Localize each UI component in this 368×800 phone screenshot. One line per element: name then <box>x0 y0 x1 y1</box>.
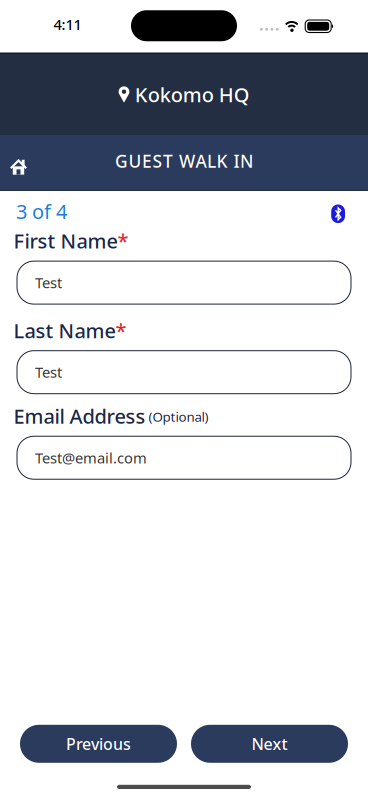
staticText: First Name <box>13 228 117 254</box>
staticText: Kokomo HQ <box>135 81 250 108</box>
staticText: 4:11 <box>53 14 81 34</box>
staticText: Email Address <box>13 403 145 429</box>
button[interactable]: Next <box>191 725 348 763</box>
staticText: 3 of 4 <box>16 198 67 225</box>
staticText: GUEST WALK IN <box>115 149 253 172</box>
staticText: Last Name <box>13 317 115 344</box>
staticText: Next <box>251 733 287 754</box>
button[interactable]: Previous <box>20 725 177 763</box>
staticText: Test <box>35 362 62 382</box>
staticText: * <box>117 228 128 254</box>
button[interactable]: Bluetooth <box>331 204 345 223</box>
staticText: (Optional) <box>145 408 208 425</box>
staticText: Test@email.com <box>35 448 147 467</box>
button[interactable]: Test <box>17 351 351 394</box>
staticText: Test <box>35 273 62 292</box>
button[interactable]: Home <box>0 150 27 175</box>
staticText: * <box>115 317 126 344</box>
staticText: Previous <box>66 733 131 754</box>
button[interactable]: Test <box>17 261 351 304</box>
button[interactable]: Test@email.com <box>17 436 351 479</box>
